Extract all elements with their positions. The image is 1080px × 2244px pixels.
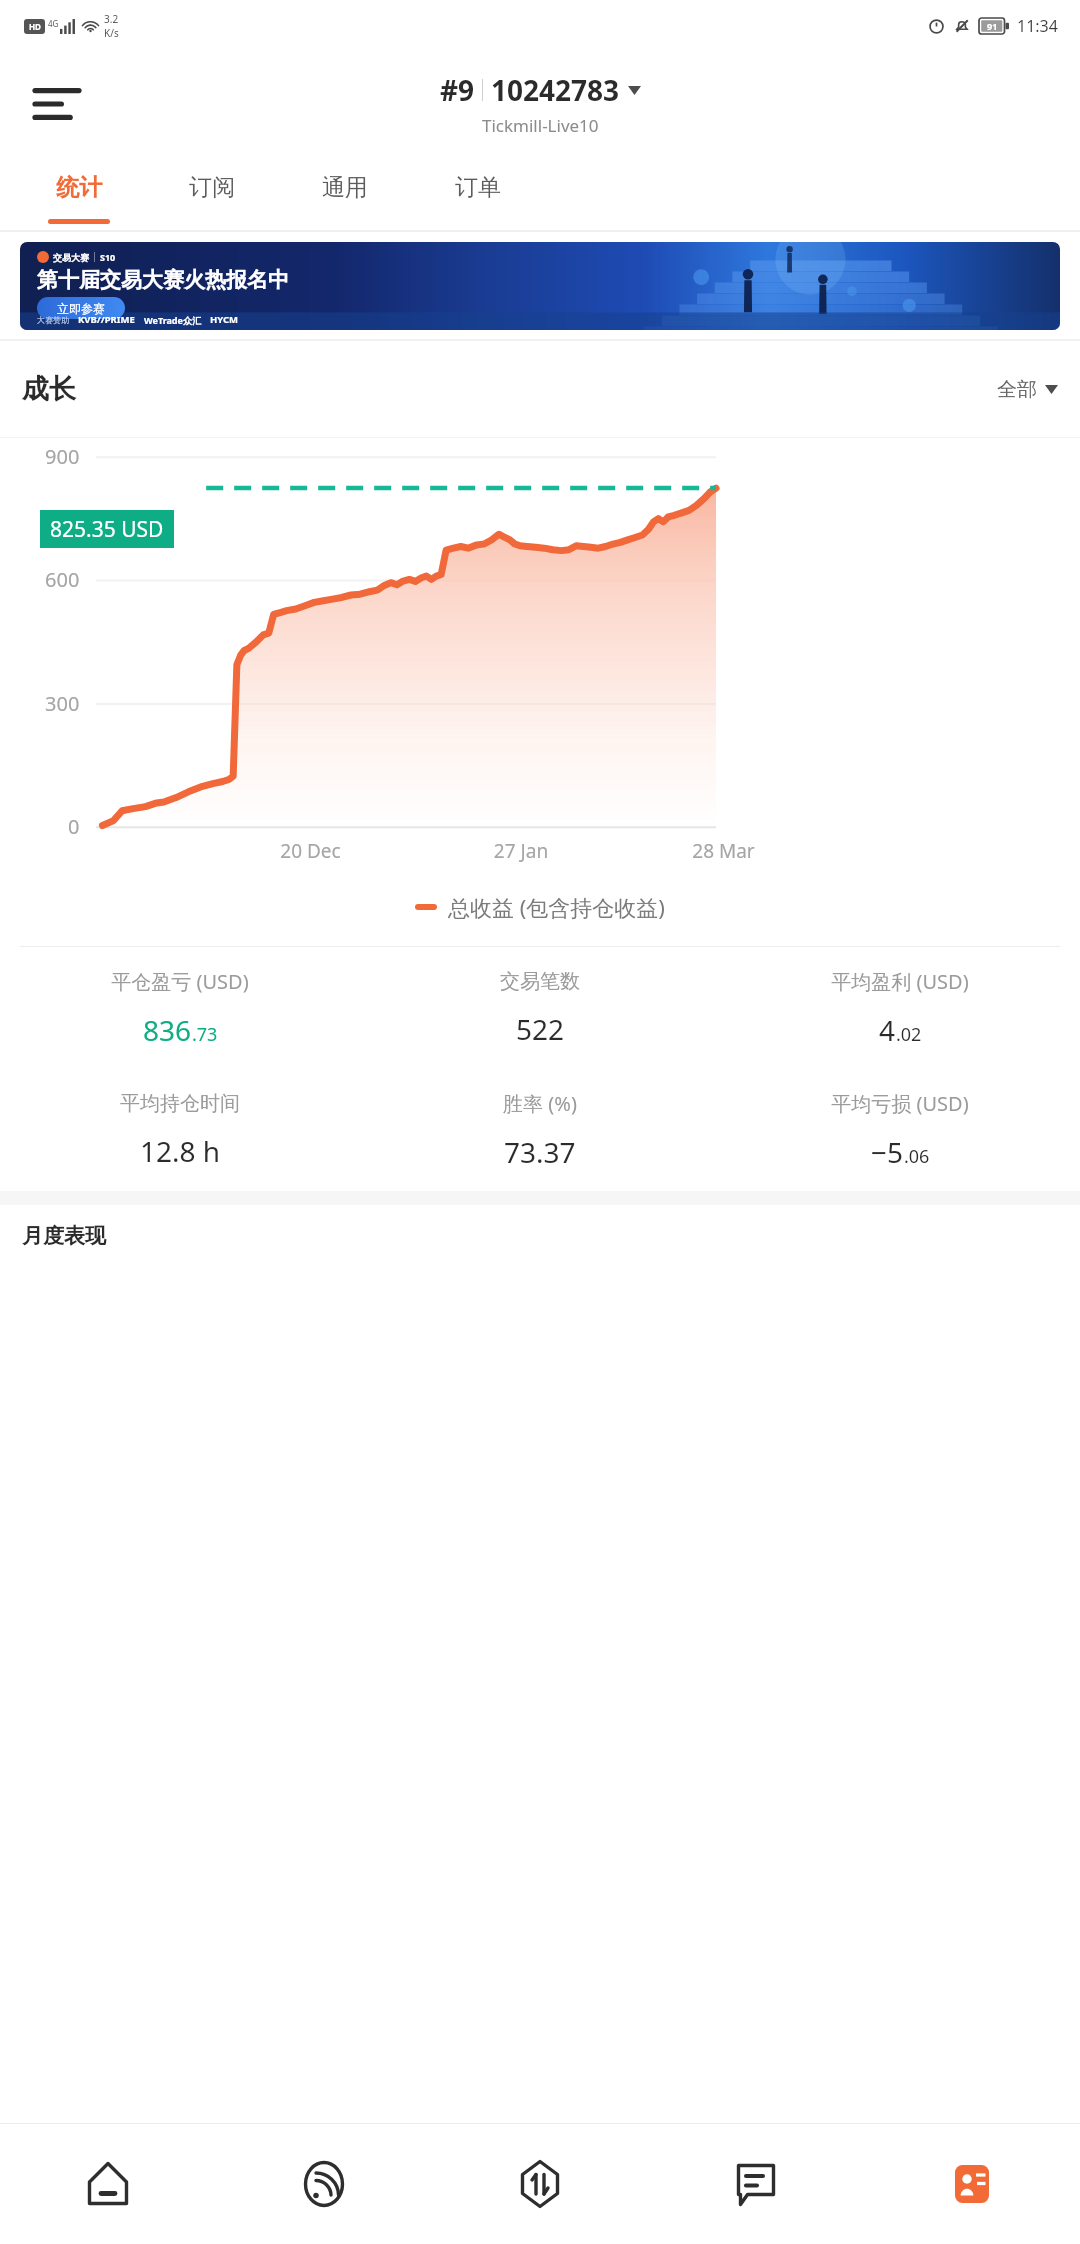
staticText: 交易笔数: [500, 969, 580, 994]
staticText: K/s: [104, 26, 119, 40]
staticText: 836: [143, 1011, 192, 1049]
button[interactable]: Profile: [864, 2124, 1080, 2244]
button[interactable]: 交易笔数: [360, 947, 720, 1069]
staticText: 立即参赛: [57, 301, 105, 316]
staticText: .73: [192, 1022, 218, 1047]
staticText: 600: [45, 566, 80, 593]
staticText: 通用: [322, 173, 368, 202]
staticText: .02: [896, 1022, 922, 1047]
staticText: 全部: [997, 377, 1037, 402]
staticText: 900: [45, 443, 80, 470]
button[interactable]: 订单: [411, 156, 544, 230]
staticText: 522: [516, 1010, 565, 1048]
button[interactable]: Trading contest banner: [20, 242, 1060, 330]
staticText: 平均亏损 (USD): [831, 1090, 969, 1117]
button[interactable]: 立即参赛: [37, 297, 125, 319]
button[interactable]: 全部: [997, 377, 1058, 402]
staticText: 平均盈利 (USD): [831, 968, 969, 995]
staticText: 12.8 h: [140, 1132, 221, 1170]
button[interactable]: Home: [0, 2124, 216, 2244]
staticText: 订阅: [189, 173, 235, 202]
staticText: 月度表现: [22, 1223, 106, 1249]
staticText: 20 Dec: [200, 838, 421, 864]
staticText: 胜率 (%): [503, 1090, 577, 1117]
staticText: 11:34: [1017, 15, 1058, 37]
staticText: HD: [29, 21, 41, 32]
staticText: 73.37: [504, 1133, 576, 1171]
staticText: #9: [440, 71, 475, 109]
button[interactable]: 平均亏损 (USD): [720, 1069, 1080, 1191]
staticText: 825.35 USD: [50, 515, 164, 544]
staticText: WeTrade众汇: [144, 314, 201, 326]
staticText: −5: [871, 1133, 904, 1171]
button[interactable]: 平均盈利 (USD): [720, 947, 1080, 1069]
staticText: 4: [879, 1011, 896, 1049]
staticText: 27 Jan: [421, 838, 621, 864]
button[interactable]: 胜率 (%): [360, 1069, 720, 1191]
staticText: 平均持仓时间: [120, 1091, 240, 1116]
staticText: 平仓盈亏 (USD): [111, 968, 249, 995]
staticText: 28 Mar: [621, 838, 826, 864]
staticText: 3.2: [104, 12, 119, 26]
staticText: 10242783: [491, 71, 620, 109]
staticText: 300: [45, 690, 80, 717]
staticText: Tickmill-Live10: [482, 114, 599, 137]
button[interactable]: Signals: [216, 2124, 432, 2244]
button[interactable]: Menu: [26, 73, 88, 135]
staticText: 总收益 (包含持仓收益): [448, 892, 665, 922]
button[interactable]: 通用: [278, 156, 411, 230]
staticText: S10: [100, 251, 116, 263]
staticText: 0: [68, 813, 80, 840]
button[interactable]: 平均持仓时间: [0, 1069, 360, 1191]
staticText: 第十届交易大赛火热报名中: [37, 267, 289, 293]
button[interactable]: Chat: [648, 2124, 864, 2244]
button[interactable]: 统计: [12, 156, 145, 230]
staticText: KVB//PRIME: [78, 313, 135, 326]
staticText: 91: [987, 20, 998, 32]
button[interactable]: #9: [440, 71, 641, 137]
staticText: 统计: [56, 173, 102, 202]
staticText: 交易大赛: [53, 252, 89, 263]
button[interactable]: Trade: [432, 2124, 648, 2244]
staticText: 订单: [455, 173, 501, 202]
staticText: HYCM: [210, 313, 239, 326]
staticText: 大赛赞助: [37, 315, 69, 325]
staticText: .06: [904, 1144, 930, 1169]
button[interactable]: 订阅: [145, 156, 278, 230]
button[interactable]: 平仓盈亏 (USD): [0, 947, 360, 1069]
staticText: 成长: [22, 372, 76, 406]
staticText: 4G: [48, 18, 59, 29]
